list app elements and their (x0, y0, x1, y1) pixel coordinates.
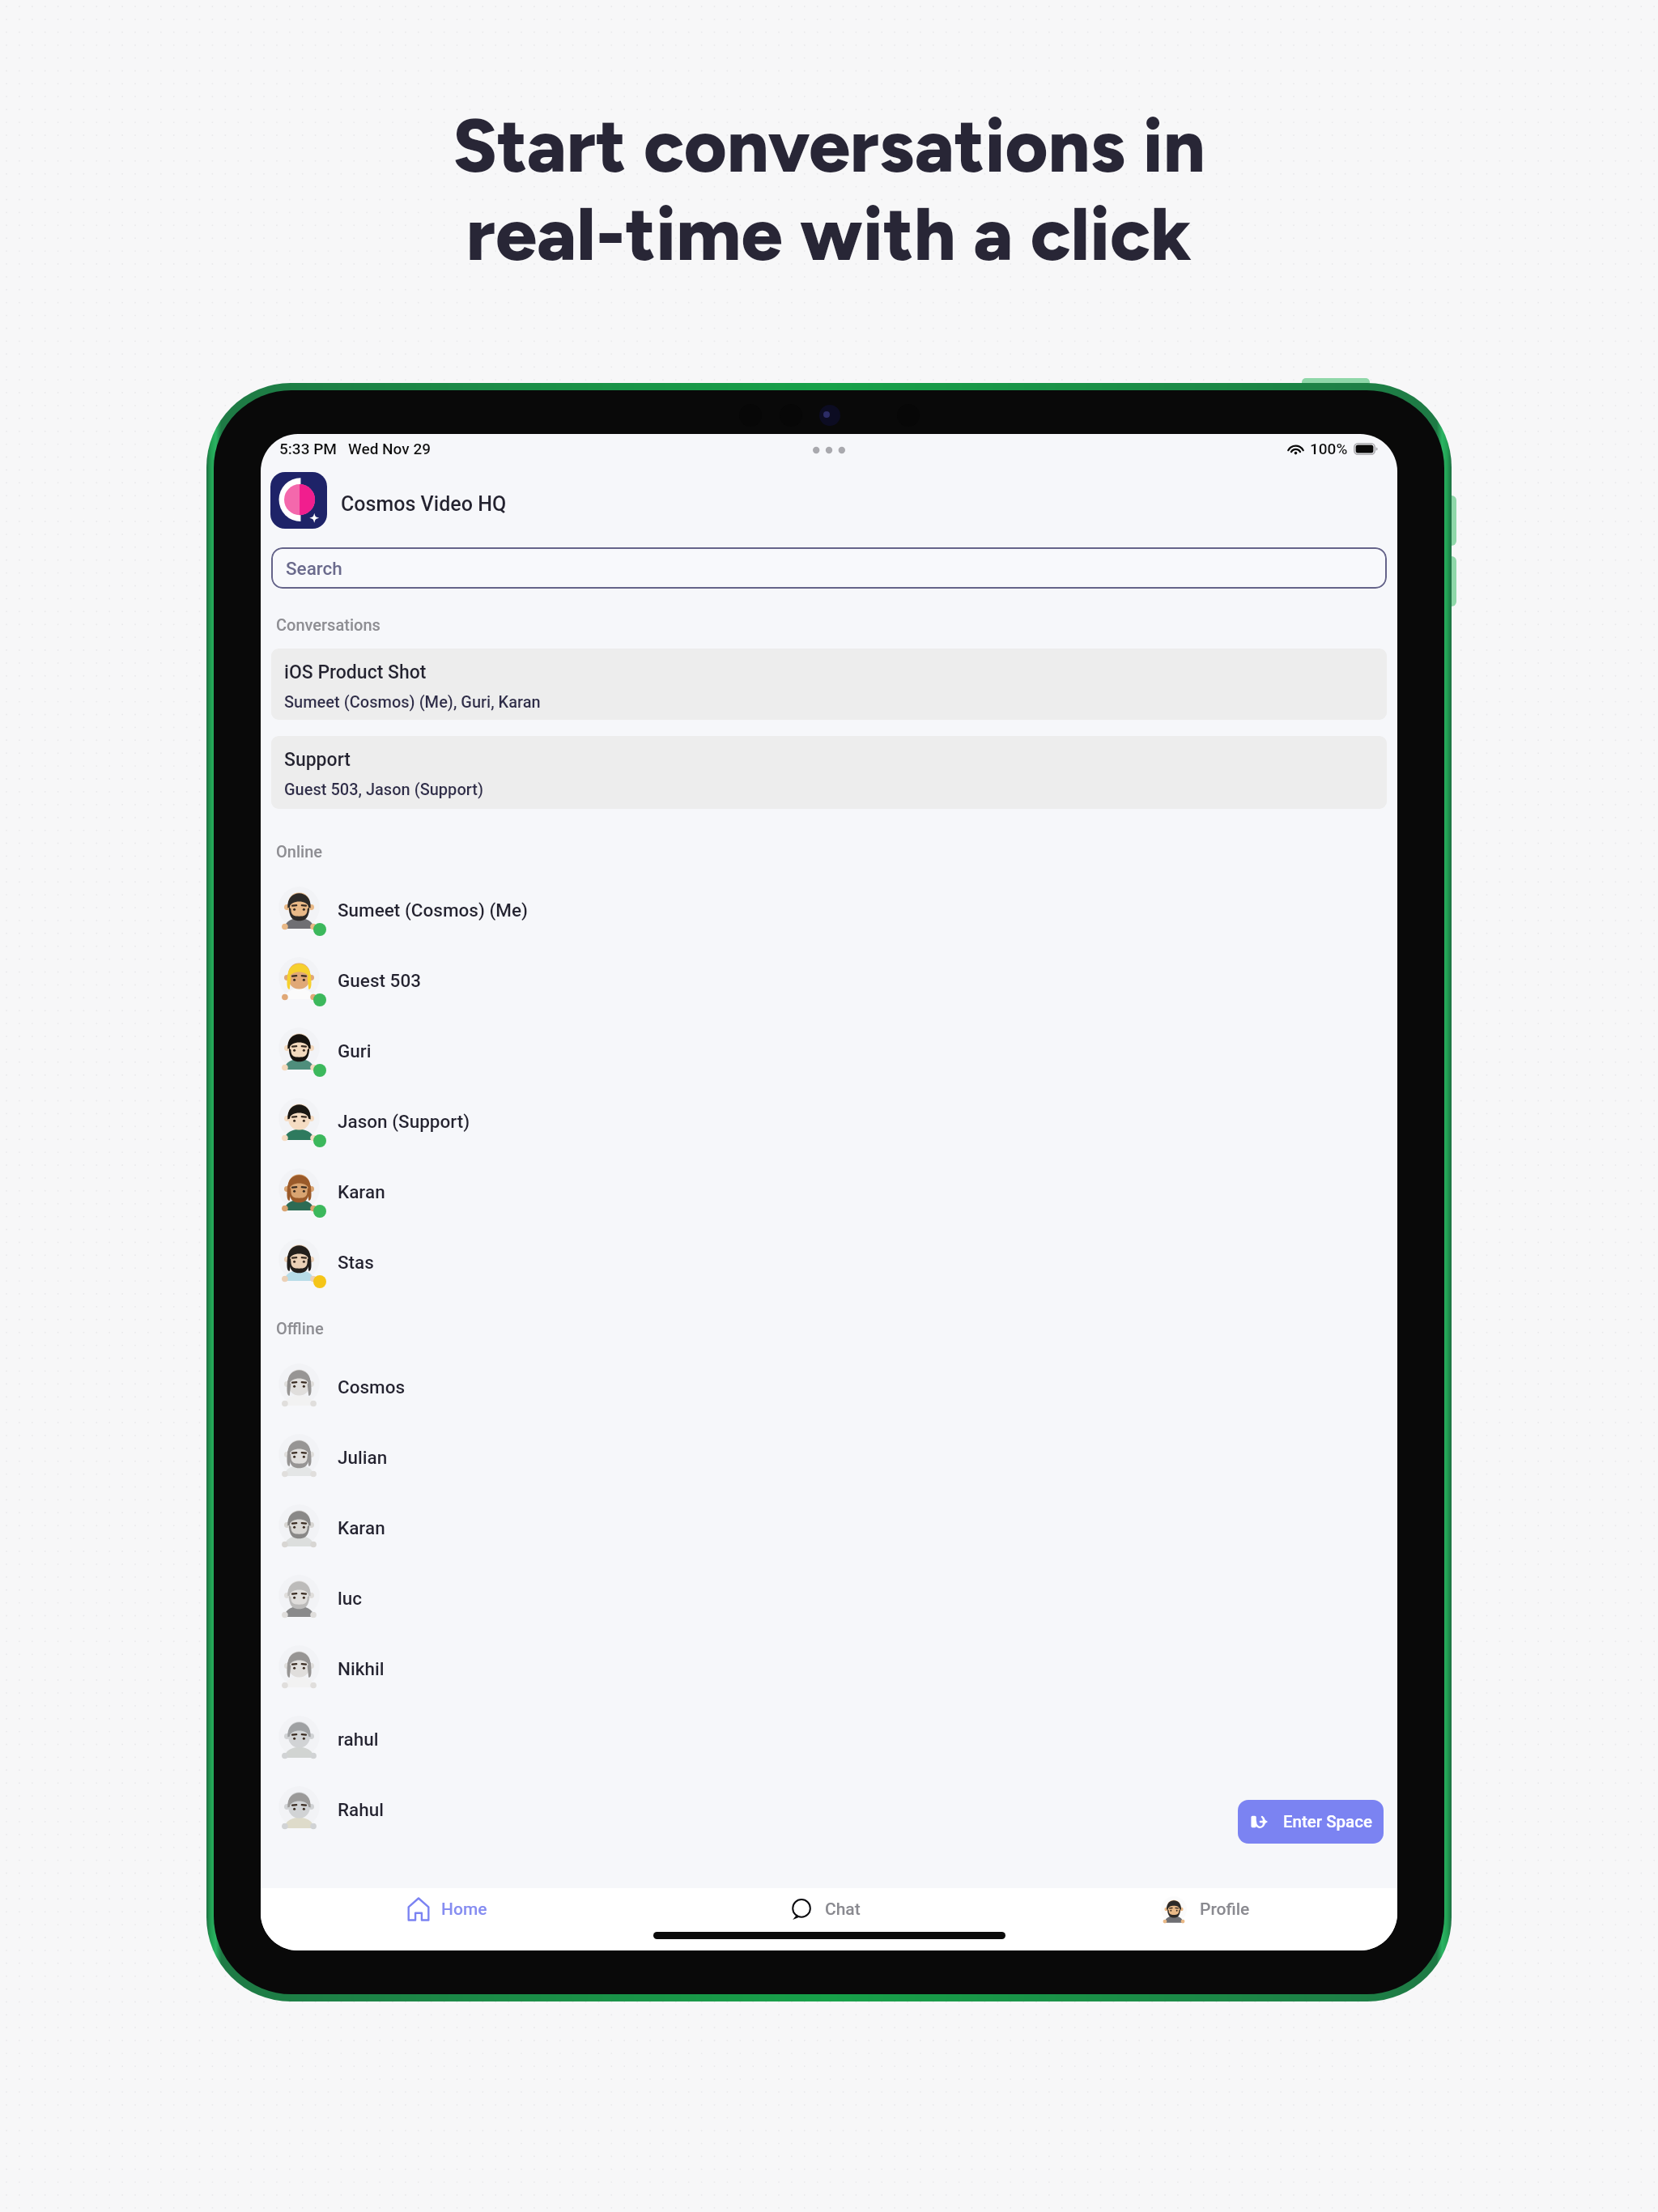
staticText: luc (338, 1588, 363, 1609)
staticText: Guri (338, 1040, 372, 1061)
staticText: Karan (338, 1517, 385, 1538)
staticText: Sumeet (Cosmos) (Me), Guri, Karan (284, 692, 541, 711)
button[interactable]: Support (271, 736, 1387, 809)
staticText: Jason (Support) (338, 1111, 470, 1132)
button[interactable]: Karan (261, 1497, 1397, 1555)
button[interactable]: Chat (790, 1893, 861, 1925)
button[interactable]: rahul (261, 1708, 1397, 1767)
staticText: iOS Product Shot (284, 661, 427, 683)
staticText: Online (276, 842, 323, 861)
staticText: Julian (338, 1447, 388, 1468)
staticText: Chat (825, 1899, 861, 1920)
button[interactable]: Stas (261, 1231, 1397, 1290)
staticText: Cosmos (338, 1376, 406, 1397)
button[interactable]: Jason (Support) (261, 1091, 1397, 1149)
staticText: Conversations (276, 615, 380, 634)
staticText: Karan (338, 1181, 385, 1202)
staticText: Rahul (338, 1799, 384, 1820)
staticText: Guest 503, Jason (Support) (284, 780, 484, 798)
staticText: Start conversations in (0, 102, 1658, 190)
button[interactable]: Karan (261, 1161, 1397, 1219)
button[interactable]: Rahul (261, 1779, 1397, 1837)
staticText: Cosmos Video HQ (341, 492, 507, 516)
button[interactable]: luc (261, 1568, 1397, 1626)
staticText: Search (286, 558, 342, 579)
staticText: Wed Nov 29 (348, 440, 432, 457)
staticText: 5:33 PM (279, 440, 337, 457)
button[interactable]: Search (271, 547, 1387, 589)
button[interactable]: Cosmos (261, 1356, 1397, 1414)
staticText: Nikhil (338, 1658, 385, 1679)
staticText: Support (284, 749, 351, 771)
button[interactable]: Cosmos Video HQ (341, 492, 507, 516)
button[interactable]: Cosmos app icon (270, 472, 327, 529)
button[interactable]: Guest 503 (261, 950, 1397, 1008)
staticText: 100% (1310, 440, 1348, 457)
button[interactable]: Julian (261, 1427, 1397, 1485)
button[interactable]: Profile (1161, 1893, 1250, 1925)
button[interactable]: Nikhil (261, 1638, 1397, 1696)
staticText: Profile (1200, 1899, 1250, 1920)
button[interactable]: Home (407, 1893, 487, 1925)
button[interactable]: Enter Space (1238, 1800, 1384, 1844)
staticText: real-time with a click (0, 190, 1658, 279)
button[interactable]: iOS Product Shot (271, 649, 1387, 720)
staticText: rahul (338, 1729, 379, 1750)
staticText: Enter Space (1283, 1812, 1372, 1831)
staticText: Home (441, 1899, 487, 1920)
staticText: Stas (338, 1252, 374, 1273)
staticText: Sumeet (Cosmos) (Me) (338, 900, 529, 921)
staticText: Offline (276, 1319, 324, 1338)
button[interactable]: Sumeet (Cosmos) (Me) (261, 879, 1397, 938)
button[interactable]: Guri (261, 1020, 1397, 1078)
staticText: Guest 503 (338, 970, 421, 991)
